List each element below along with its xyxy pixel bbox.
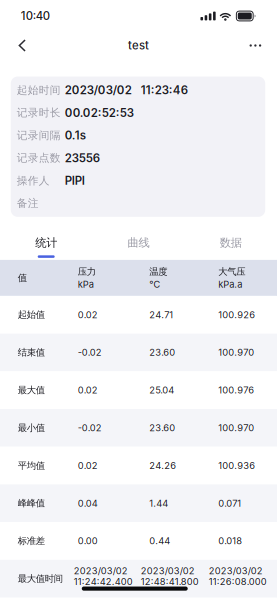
staticText: 0.071: [218, 498, 241, 509]
staticText: 23556: [65, 151, 100, 165]
staticText: 压力: [78, 266, 96, 278]
staticText: 0.44: [149, 535, 170, 547]
staticText: 25.04: [149, 384, 174, 396]
staticText: 最大值: [18, 384, 45, 396]
staticText: 0.02: [78, 384, 98, 396]
staticText: PIPI: [65, 174, 85, 188]
staticText: 0.00: [78, 535, 98, 547]
staticText: 100.976: [218, 384, 254, 396]
staticText: 平均值: [18, 460, 45, 471]
button[interactable]: 数据: [185, 217, 277, 260]
staticText: -0.02: [78, 422, 102, 433]
staticText: 24.26: [149, 460, 176, 471]
staticText: kPa: [78, 279, 94, 290]
staticText: 100.970: [218, 422, 254, 433]
staticText: 2023/03/02: [74, 565, 128, 576]
staticText: 值: [18, 272, 27, 284]
staticText: 23.60: [149, 422, 175, 433]
staticText: 0.04: [78, 498, 98, 509]
staticText: 0.1s: [65, 128, 86, 142]
staticText: 峰峰值: [18, 497, 45, 509]
staticText: 11:26:08.000: [209, 576, 267, 587]
staticText: test: [128, 39, 149, 52]
staticText: 结束值: [18, 347, 45, 358]
staticText: 00.02:52:53: [65, 106, 134, 120]
button[interactable]: 曲线: [92, 217, 185, 260]
staticText: 最大值时间: [18, 573, 63, 585]
staticText: -0.02: [78, 347, 102, 358]
staticText: 24.71: [149, 309, 173, 320]
staticText: 0.018: [218, 535, 242, 547]
staticText: 记录点数: [17, 151, 61, 165]
staticText: 起始值: [18, 309, 45, 321]
staticText: 统计: [35, 235, 57, 250]
button[interactable]: Back: [0, 34, 38, 57]
staticText: 100.970: [218, 347, 254, 358]
staticText: 最小值: [18, 422, 45, 434]
staticText: 备注: [17, 196, 39, 210]
staticText: 2023/03/02: [209, 565, 263, 576]
button[interactable]: 统计: [0, 217, 92, 260]
staticText: 10:40: [21, 9, 50, 23]
staticText: 1.44: [149, 498, 168, 509]
staticText: 曲线: [127, 235, 149, 250]
staticText: 记录时长: [17, 106, 61, 119]
staticText: 100.936: [218, 460, 255, 471]
staticText: 2023/03/02: [141, 565, 195, 576]
staticText: ℃: [149, 279, 160, 290]
staticText: 12:48:41.800: [141, 576, 199, 587]
staticText: 11:24:42.400: [74, 576, 133, 587]
staticText: 0.02: [78, 309, 98, 320]
staticText: 100.926: [218, 309, 255, 320]
staticText: 起始时间: [17, 83, 61, 97]
staticText: 2023/03/02 11:23:46: [65, 83, 188, 97]
staticText: 操作人: [17, 174, 50, 187]
staticText: 数据: [220, 235, 242, 250]
staticText: 标准差: [18, 535, 45, 547]
staticText: 0.02: [78, 460, 98, 471]
staticText: 大气压: [218, 266, 245, 278]
staticText: 温度: [149, 266, 167, 278]
staticText: 23.60: [149, 347, 175, 358]
button[interactable]: More options: [238, 35, 277, 56]
staticText: kPa.a: [218, 279, 242, 290]
staticText: 记录间隔: [17, 129, 61, 142]
